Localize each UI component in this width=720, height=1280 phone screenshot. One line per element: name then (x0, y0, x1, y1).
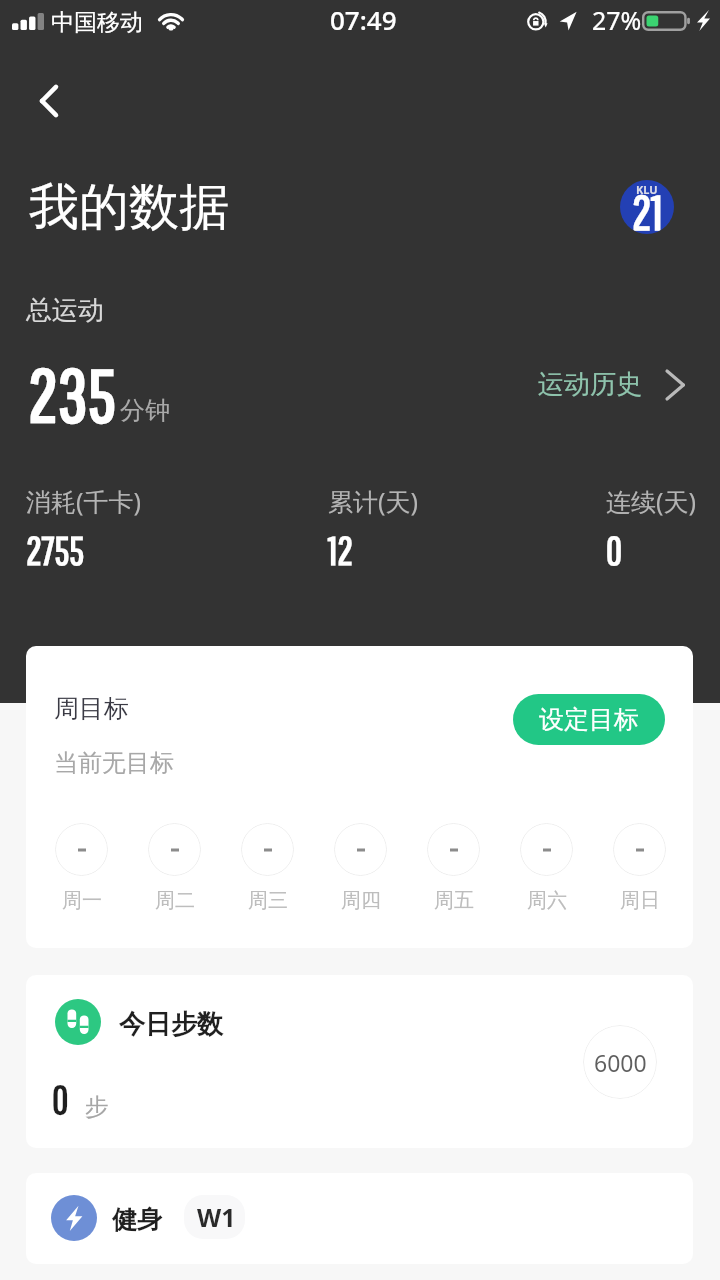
button[interactable]: 周四 (314, 823, 407, 913)
staticText: 周三 (248, 888, 288, 913)
staticText: KLU (636, 182, 658, 197)
staticText: 周四 (341, 888, 381, 913)
staticText: 运动历史 (538, 368, 642, 401)
button[interactable]: 周三 (221, 823, 314, 913)
button[interactable]: 6000 (26, 975, 693, 1148)
button[interactable]: Profile avatar (620, 180, 674, 234)
button[interactable]: 运动历史 (538, 368, 685, 401)
button[interactable]: 周五 (407, 823, 500, 913)
staticText: 235 (28, 351, 116, 436)
staticText: 周一 (62, 888, 102, 913)
staticText: W1 (197, 1200, 236, 1234)
staticText: 21 (632, 184, 663, 234)
staticText: 0 (606, 528, 623, 573)
staticText: 消耗(千卡) (26, 484, 142, 518)
button[interactable]: 周六 (500, 823, 593, 913)
staticText: 累计(天) (328, 484, 419, 518)
button[interactable]: 周日 (593, 823, 686, 913)
button[interactable]: 设定目标 (513, 694, 665, 745)
staticText: 27% (592, 3, 642, 37)
staticText: 今日步数 (119, 1008, 223, 1041)
staticText: 周目标 (54, 693, 129, 724)
staticText: 12 (328, 528, 353, 573)
staticText: 中国移动 (51, 8, 143, 37)
button[interactable]: 周二 (128, 823, 221, 913)
staticText: 分钟 (120, 395, 170, 426)
staticText: 6000 (594, 1047, 647, 1078)
staticText: 我的数据 (29, 176, 229, 239)
staticText: 周六 (527, 888, 567, 913)
button[interactable]: Back (16, 72, 82, 130)
button[interactable]: 周一 (35, 823, 128, 913)
staticText: 0 (52, 1076, 69, 1122)
staticText: 当前无目标 (54, 748, 174, 778)
staticText: 设定目标 (539, 704, 639, 735)
staticText: 2755 (26, 528, 85, 573)
staticText: 健身 (112, 1204, 162, 1235)
button[interactable]: 健身 (26, 1173, 693, 1264)
staticText: 连续(天) (606, 484, 697, 518)
staticText: 周五 (434, 888, 474, 913)
staticText: 步 (85, 1092, 109, 1122)
staticText: 总运动 (26, 294, 104, 327)
staticText: 07:49 (330, 2, 397, 37)
staticText: 周日 (620, 888, 660, 913)
staticText: 周二 (155, 888, 195, 913)
